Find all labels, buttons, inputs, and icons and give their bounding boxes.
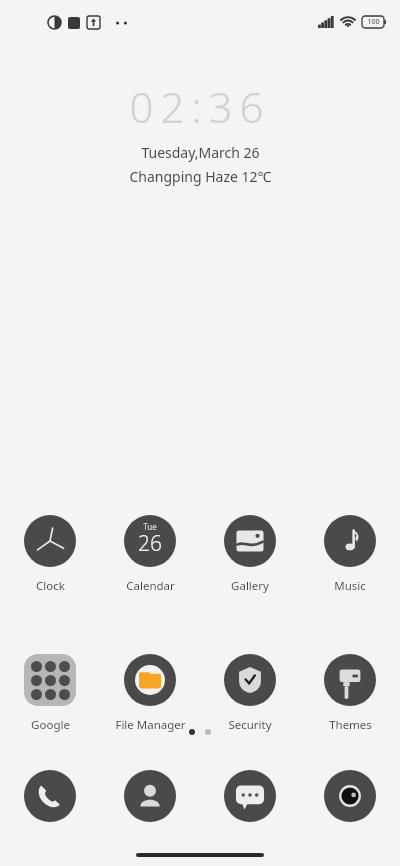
staticText: Security: [228, 717, 272, 733]
staticText: File Manager: [115, 717, 186, 733]
staticText: Changping Haze 12℃: [129, 167, 272, 186]
staticText: 02:36: [129, 78, 271, 135]
button[interactable]: Themes: [300, 654, 400, 733]
button[interactable]: Contacts: [100, 770, 200, 822]
button[interactable]: Gallery: [200, 515, 300, 594]
staticText: Themes: [329, 717, 372, 733]
staticText: Clock: [36, 578, 65, 594]
staticText: 26: [138, 529, 162, 558]
staticText: Calendar: [126, 578, 175, 594]
button[interactable]: Clock: [0, 515, 100, 594]
button[interactable]: Tue: [100, 515, 200, 594]
staticText: Tuesday,March 26: [141, 143, 260, 162]
staticText: Google: [31, 717, 70, 733]
button[interactable]: Camera: [300, 770, 400, 822]
staticText: Music: [334, 578, 366, 594]
button[interactable]: Music: [300, 515, 400, 594]
button[interactable]: Security: [200, 654, 300, 733]
button[interactable]: Messages: [200, 770, 300, 822]
button[interactable]: Google: [0, 654, 100, 733]
staticText: Tue: [143, 521, 157, 532]
staticText: 100: [367, 17, 380, 27]
button[interactable]: File Manager: [100, 654, 200, 733]
staticText: Gallery: [231, 578, 269, 594]
button[interactable]: Phone: [0, 770, 100, 822]
